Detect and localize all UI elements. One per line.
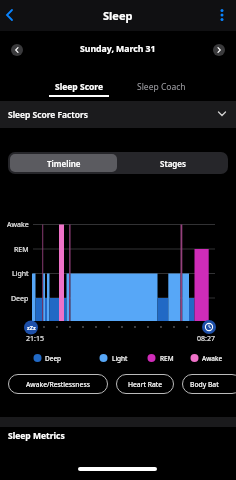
staticText: REM	[160, 354, 174, 363]
staticText: Sleep	[103, 8, 133, 23]
button[interactable]: Stages	[119, 154, 226, 172]
staticText: Body Bat	[190, 380, 219, 389]
button[interactable]	[0, 101, 236, 128]
staticText: Sleep Score Factors	[8, 109, 88, 121]
button[interactable]: Body Bat	[182, 374, 236, 394]
button[interactable]	[1, 6, 19, 24]
staticText: Stages	[160, 158, 186, 169]
staticText: Sleep Score	[55, 81, 104, 93]
button[interactable]	[213, 6, 231, 24]
button[interactable]: Awake/Restlessness	[8, 374, 108, 394]
staticText: Heart Rate	[128, 380, 163, 389]
staticText: Light	[12, 269, 29, 279]
staticText: Sunday, March 31	[80, 43, 156, 55]
staticText: Awake/Restlessness	[26, 380, 90, 389]
button[interactable]: Sleep Score	[39, 79, 119, 94]
staticText: 21:15	[26, 334, 44, 344]
button[interactable]	[213, 44, 225, 56]
button[interactable]	[11, 44, 23, 56]
staticText: 08:27	[197, 334, 215, 344]
button[interactable]: Heart Rate	[116, 374, 174, 394]
staticText: Timeline	[47, 158, 81, 169]
staticText: Awake	[7, 220, 29, 230]
staticText: Light	[112, 354, 128, 363]
button[interactable]: Sleep Coach	[121, 79, 201, 94]
button[interactable]: Timeline	[10, 154, 117, 172]
staticText: Deep	[11, 294, 29, 304]
staticText: zZz	[27, 324, 36, 331]
staticText: REM	[14, 245, 29, 255]
staticText: Deep	[45, 354, 62, 363]
staticText: Sleep Coach	[137, 81, 186, 93]
staticText: Sleep Metrics	[8, 430, 65, 442]
staticText: Awake	[202, 354, 223, 363]
